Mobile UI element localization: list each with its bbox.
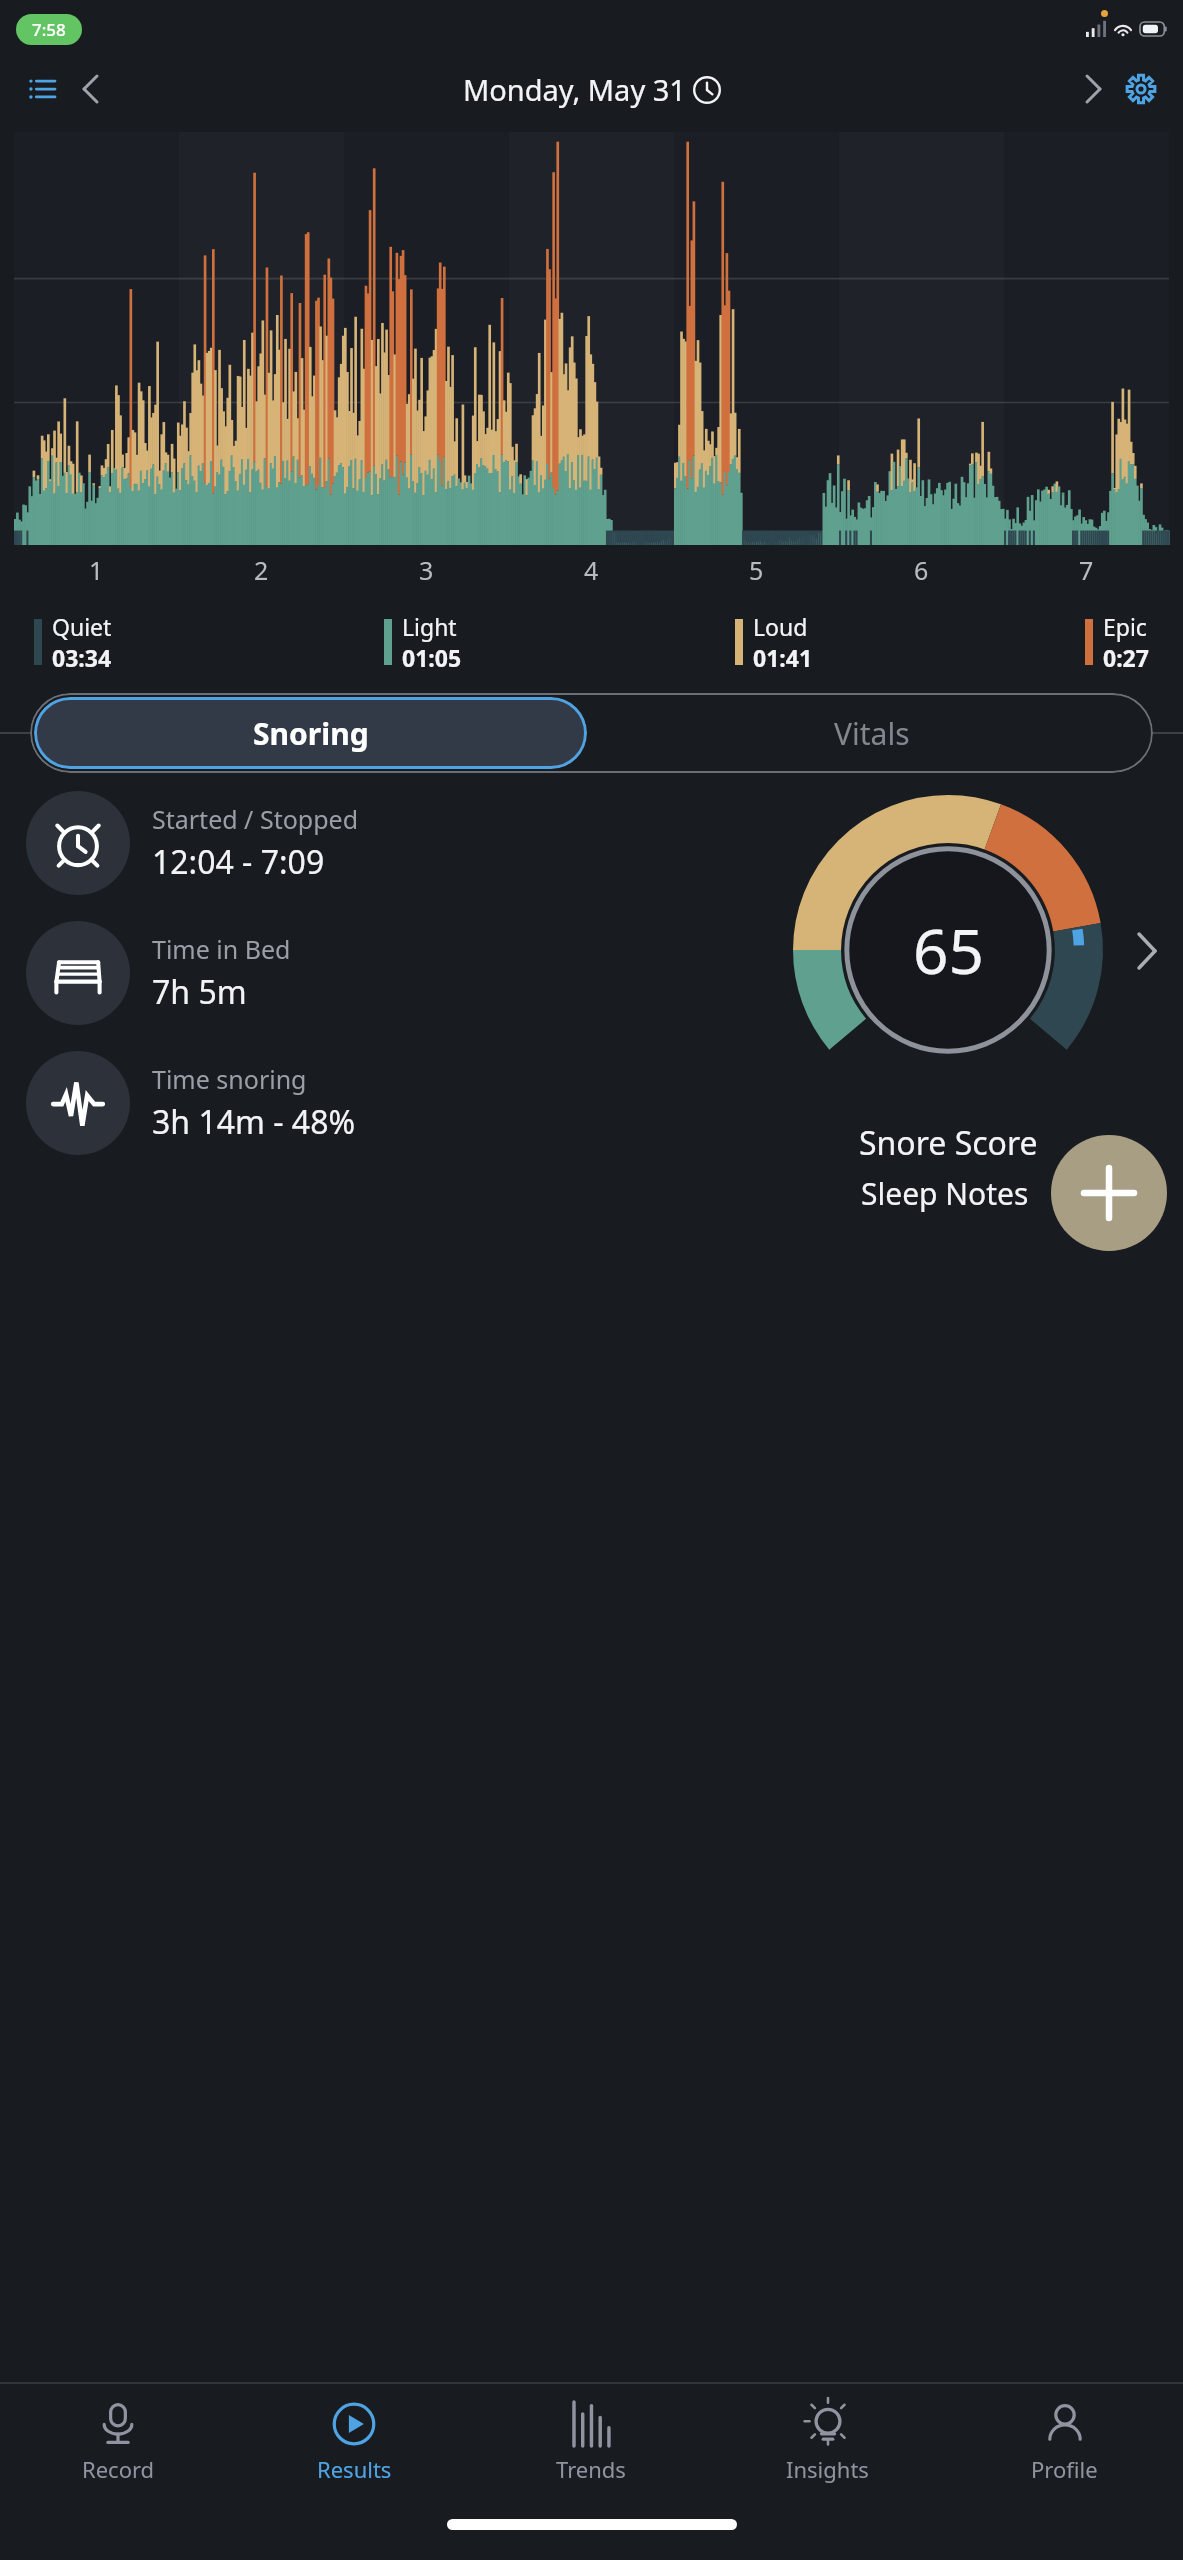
staticText: 3h 14m - 48% [152,1100,356,1144]
staticText: Snoring [253,713,369,754]
staticText: 7:58 [32,18,66,41]
button[interactable]: Trends [472,2385,709,2500]
staticText: Monday, May 31 [463,70,686,109]
button[interactable]: Time in Bed [26,921,713,1025]
button[interactable]: Next day [1069,65,1117,113]
staticText: 7 [1079,553,1094,587]
button[interactable]: Results [236,2385,472,2500]
staticText: 7h 5m [152,970,247,1014]
button[interactable]: Profile [946,2385,1183,2500]
staticText: Snore Score [859,1121,1038,1165]
staticText: Quiet [52,611,112,642]
button[interactable]: Insights [709,2385,946,2500]
button[interactable]: Settings [1117,65,1165,113]
staticText: Epic [1103,611,1147,642]
staticText: Time snoring [152,1062,307,1096]
staticText: 03:34 [52,642,112,673]
button[interactable]: Previous day [66,65,114,113]
staticText: Started / Stopped [152,802,359,836]
staticText: 5 [749,553,764,587]
staticText: 6 [914,553,929,587]
staticText: 2 [254,553,269,587]
button[interactable]: Add sleep note [1051,1135,1167,1251]
staticText: 01:41 [753,642,813,673]
staticText: Light [402,611,457,642]
staticText: Vitals [834,713,910,754]
button[interactable]: Started / Stopped [26,791,713,895]
staticText: Record [82,2454,155,2484]
staticText: Results [317,2454,392,2484]
staticText: 0:27 [1103,642,1149,673]
staticText: 3 [419,553,434,587]
staticText: Sleep Notes [861,1173,1029,1214]
staticText: Loud [753,611,808,642]
staticText: 4 [584,553,599,587]
button[interactable]: More score details [1117,921,1177,981]
staticText: 01:05 [402,642,462,673]
button[interactable]: List of recordings [18,65,66,113]
button[interactable]: Time snoring [26,1051,713,1155]
staticText: Profile [1031,2454,1098,2484]
staticText: 12:04 - 7:09 [152,840,325,884]
staticText: 1 [89,553,104,587]
staticText: Time in Bed [152,932,291,966]
button[interactable]: Record [0,2385,236,2500]
staticText: Trends [556,2454,626,2484]
button[interactable]: Vitals [591,693,1153,773]
staticText: Insights [786,2454,869,2484]
staticText: 65 [913,908,984,992]
button[interactable]: Snoring [34,697,587,769]
